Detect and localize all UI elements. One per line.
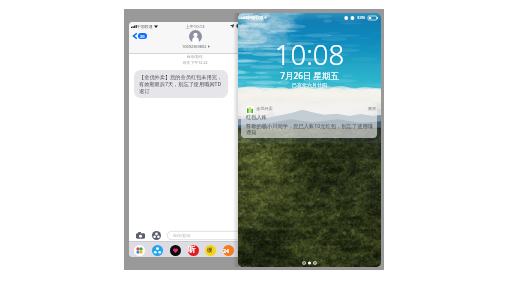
button[interactable]: App 2 <box>152 245 163 256</box>
button[interactable]: 短信/彩信 <box>167 231 255 240</box>
button[interactable]: App 1 <box>134 245 145 256</box>
staticText: 己亥年六月廿四 <box>238 82 381 88</box>
staticText: 7月26日 星期五 <box>238 70 381 81</box>
staticText: 中国联通 <box>247 15 264 20</box>
button[interactable]: App 4 <box>188 245 199 256</box>
other: Back <box>133 33 137 39</box>
button[interactable]: Back <box>133 33 146 39</box>
staticText: 听 <box>188 245 196 254</box>
staticText: 33% <box>357 15 366 21</box>
staticText: 展开 <box>368 106 377 111</box>
button[interactable]: App 7 <box>241 245 252 256</box>
button[interactable]: App Store <box>152 231 161 240</box>
staticText: 10:08 <box>238 36 381 73</box>
staticText: 上午10:12 <box>129 24 261 30</box>
staticText: 缓 <box>207 247 213 254</box>
button[interactable]: 【金优外卖】您的会员红包未用完，有效期最后7天，别忘了使用哦回TD退订 <box>134 70 228 98</box>
button[interactable]: Camera <box>136 232 145 239</box>
staticText: 红包入账 <box>246 114 267 121</box>
button[interactable]: 金优外卖 <box>241 103 377 138</box>
button[interactable]: App 5 <box>205 245 216 256</box>
staticText: 尊敬的杨小川同学，您已入账10元红包，别忘了使用哦通知 <box>246 122 375 136</box>
staticText: 中国联通 <box>137 24 153 29</box>
button[interactable]: App 3 <box>170 245 181 256</box>
staticText: 短信/彩信 <box>173 233 191 238</box>
staticText: 金优外卖 <box>256 106 273 111</box>
staticText: 20 <box>140 34 145 39</box>
staticText: 24 <box>223 247 230 254</box>
staticText: 短信/彩信 <box>187 54 203 59</box>
staticText: 10692369802 <box>182 44 207 49</box>
staticText: 【金优外卖】您的会员红包未用完，有效期最后7天，别忘了使用哦回TD退订 <box>139 74 223 94</box>
button[interactable]: App 6 <box>223 245 234 256</box>
staticText: 昨天 下午12:22 <box>183 60 208 65</box>
